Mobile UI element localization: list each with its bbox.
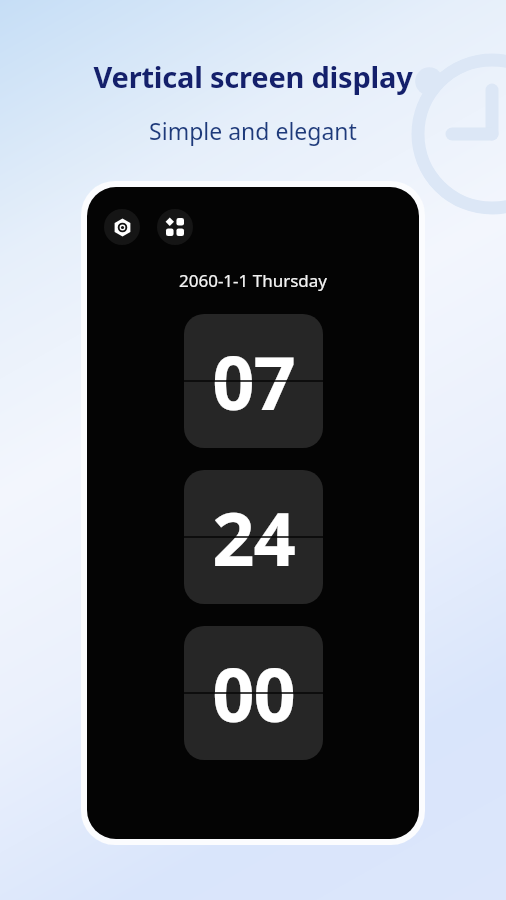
staticText: 00	[212, 643, 295, 744]
button[interactable]: 24	[184, 470, 323, 604]
staticText: 2060-1-1 Thursday	[87, 269, 419, 292]
staticText: Simple and elegant	[0, 115, 506, 146]
button[interactable]: Style	[157, 209, 193, 245]
button[interactable]: Settings	[104, 209, 140, 245]
button[interactable]: 00	[184, 626, 323, 760]
staticText: 24	[212, 487, 295, 588]
button[interactable]: 07	[184, 314, 323, 448]
staticText: Vertical screen display	[0, 57, 506, 96]
staticText: 07	[212, 331, 295, 432]
